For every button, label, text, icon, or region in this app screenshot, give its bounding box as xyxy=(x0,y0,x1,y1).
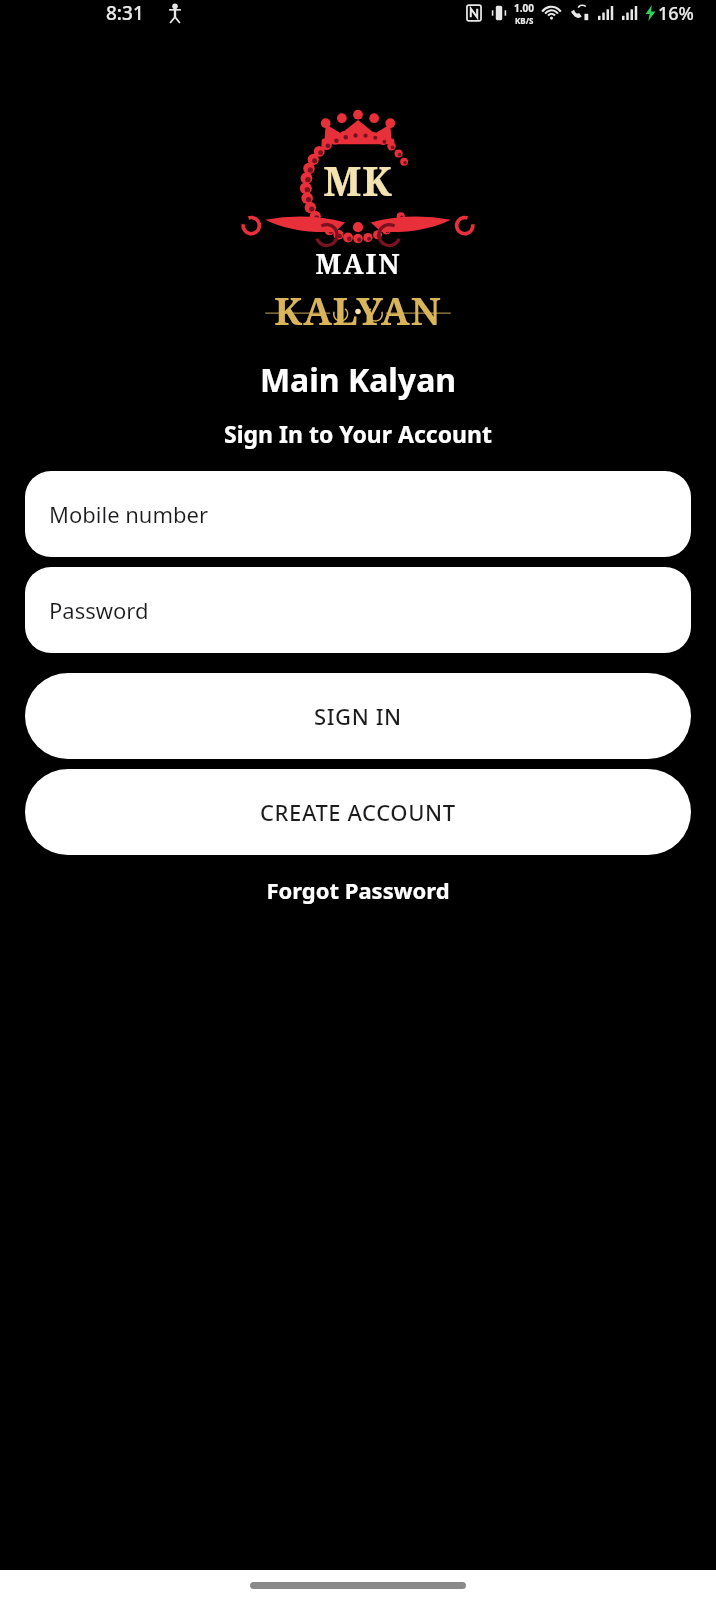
staticText: Password xyxy=(49,595,149,625)
staticText: Forgot Password xyxy=(266,875,450,905)
button[interactable]: Password xyxy=(25,567,691,653)
staticText: Mobile number xyxy=(49,499,209,529)
staticText: 1.00 xyxy=(514,1,534,15)
button[interactable]: CREATE ACCOUNT xyxy=(25,769,691,855)
button[interactable]: SIGN IN xyxy=(25,673,691,759)
staticText: Sign In to Your Account xyxy=(0,418,716,449)
staticText: Main Kalyan xyxy=(0,358,716,402)
staticText: CREATE ACCOUNT xyxy=(260,797,456,827)
staticText: MAIN xyxy=(315,245,402,282)
button[interactable]: Mobile number xyxy=(25,471,691,557)
staticText: MK xyxy=(323,153,393,207)
staticText: SIGN IN xyxy=(314,701,402,731)
staticText: 16% xyxy=(658,1,694,26)
staticText: 8:31 xyxy=(106,0,144,26)
button[interactable]: Forgot Password xyxy=(0,867,716,913)
staticText: KB/S xyxy=(515,15,534,26)
staticText: KALYAN xyxy=(274,284,442,336)
